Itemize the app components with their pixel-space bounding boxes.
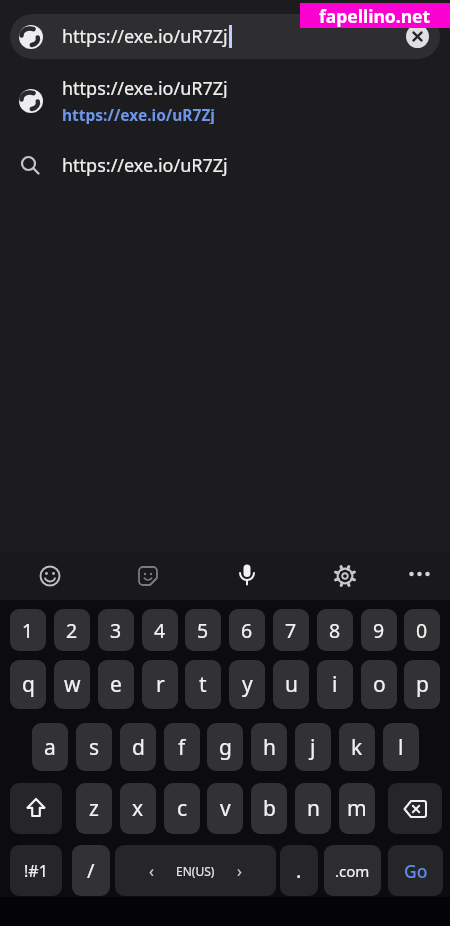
button[interactable]: o bbox=[361, 660, 397, 709]
staticText: f bbox=[178, 733, 186, 762]
button[interactable]: y bbox=[229, 660, 265, 709]
staticText: l bbox=[398, 733, 404, 762]
button[interactable] bbox=[10, 14, 440, 59]
staticText: 4 bbox=[154, 617, 166, 644]
staticText: .com bbox=[335, 861, 370, 881]
button[interactable]: 4 bbox=[142, 609, 178, 651]
staticText: w bbox=[64, 670, 81, 699]
button[interactable]: q bbox=[10, 660, 46, 709]
button[interactable] bbox=[396, 548, 440, 592]
staticText: https://exe.io/uR7Zj bbox=[62, 153, 228, 178]
button[interactable]: t bbox=[185, 660, 221, 709]
button[interactable]: c bbox=[164, 783, 200, 834]
staticText: i bbox=[332, 670, 338, 699]
button[interactable]: 5 bbox=[185, 609, 221, 651]
button[interactable]: u bbox=[273, 660, 309, 709]
staticText: p bbox=[416, 670, 429, 699]
button[interactable]: https://exe.io/uR7Zj bbox=[0, 72, 450, 130]
staticText: 5 bbox=[197, 617, 209, 644]
button[interactable]: j bbox=[295, 723, 331, 771]
staticText: EN(US) bbox=[176, 863, 215, 879]
button[interactable]: i bbox=[317, 660, 353, 709]
staticText: a bbox=[44, 733, 56, 762]
button[interactable]: z bbox=[76, 783, 112, 834]
staticText: m bbox=[347, 794, 367, 823]
button[interactable]: a bbox=[32, 723, 68, 771]
button[interactable]: r bbox=[142, 660, 178, 709]
staticText: s bbox=[89, 733, 100, 762]
button[interactable]: 2 bbox=[54, 609, 90, 651]
button[interactable]: g bbox=[207, 723, 243, 771]
button[interactable]: w bbox=[54, 660, 90, 709]
staticText: . bbox=[296, 857, 302, 884]
staticText: g bbox=[219, 733, 232, 762]
staticText: y bbox=[242, 670, 253, 699]
button[interactable]: b bbox=[251, 783, 287, 834]
button[interactable]: .com bbox=[324, 845, 381, 896]
button[interactable]: s bbox=[76, 723, 112, 771]
button[interactable]: l bbox=[383, 723, 419, 771]
button[interactable] bbox=[10, 783, 62, 834]
staticText: / bbox=[87, 857, 95, 884]
button[interactable]: 6 bbox=[229, 609, 265, 651]
staticText: https://exe.io/uR7Zj bbox=[62, 24, 228, 49]
button[interactable]: e bbox=[98, 660, 134, 709]
button[interactable]: f bbox=[164, 723, 200, 771]
button[interactable]: / bbox=[72, 845, 110, 896]
staticText: 0 bbox=[416, 617, 428, 644]
staticText: c bbox=[177, 794, 188, 823]
button[interactable]: 7 bbox=[273, 609, 309, 651]
button[interactable] bbox=[127, 555, 169, 597]
button[interactable]: Go bbox=[388, 845, 443, 896]
button[interactable] bbox=[225, 553, 269, 597]
button[interactable]: d bbox=[120, 723, 156, 771]
button[interactable]: 3 bbox=[98, 609, 134, 651]
button[interactable]: n bbox=[295, 783, 331, 834]
button[interactable] bbox=[323, 554, 367, 598]
staticText: u bbox=[285, 670, 298, 699]
staticText: t bbox=[199, 670, 207, 699]
button[interactable]: 1 bbox=[10, 609, 46, 651]
button[interactable] bbox=[29, 555, 71, 597]
staticText: d bbox=[132, 733, 145, 762]
button[interactable]: !#1 bbox=[10, 845, 62, 896]
button[interactable]: x bbox=[120, 783, 156, 834]
staticText: https://exe.io/uR7Zj bbox=[62, 76, 228, 98]
button[interactable]: ‹ bbox=[115, 845, 276, 896]
staticText: r bbox=[156, 670, 165, 699]
staticText: o bbox=[373, 670, 386, 699]
staticText: 3 bbox=[110, 617, 122, 644]
staticText: 7 bbox=[285, 617, 297, 644]
button[interactable]: 9 bbox=[361, 609, 397, 651]
staticText: 6 bbox=[241, 617, 253, 644]
staticText: 2 bbox=[66, 617, 78, 644]
staticText: b bbox=[263, 794, 276, 823]
staticText: Go bbox=[404, 859, 428, 883]
staticText: 9 bbox=[373, 617, 385, 644]
staticText: v bbox=[220, 794, 231, 823]
staticText: 1 bbox=[22, 617, 34, 644]
button[interactable]: v bbox=[207, 783, 243, 834]
button[interactable]: k bbox=[339, 723, 375, 771]
button[interactable]: 8 bbox=[317, 609, 353, 651]
staticText: fapellino.net bbox=[319, 4, 431, 28]
staticText: h bbox=[263, 733, 276, 762]
button[interactable]: h bbox=[251, 723, 287, 771]
button[interactable]: 0 bbox=[404, 609, 440, 651]
staticText: ‹ bbox=[149, 860, 154, 882]
button[interactable] bbox=[388, 783, 442, 834]
staticText: e bbox=[110, 670, 122, 699]
staticText: q bbox=[22, 670, 35, 699]
staticText: z bbox=[89, 794, 99, 823]
staticText: https://exe.io/uR7Zj bbox=[62, 104, 215, 124]
button[interactable]: https://exe.io/uR7Zj bbox=[0, 144, 450, 186]
button[interactable]: m bbox=[339, 783, 375, 834]
staticText: k bbox=[351, 733, 363, 762]
staticText: n bbox=[307, 794, 320, 823]
staticText: › bbox=[237, 860, 242, 882]
staticText: j bbox=[310, 733, 316, 762]
button[interactable]: . bbox=[280, 845, 318, 896]
staticText: !#1 bbox=[24, 860, 48, 882]
staticText: 8 bbox=[329, 617, 341, 644]
button[interactable]: p bbox=[404, 660, 440, 709]
